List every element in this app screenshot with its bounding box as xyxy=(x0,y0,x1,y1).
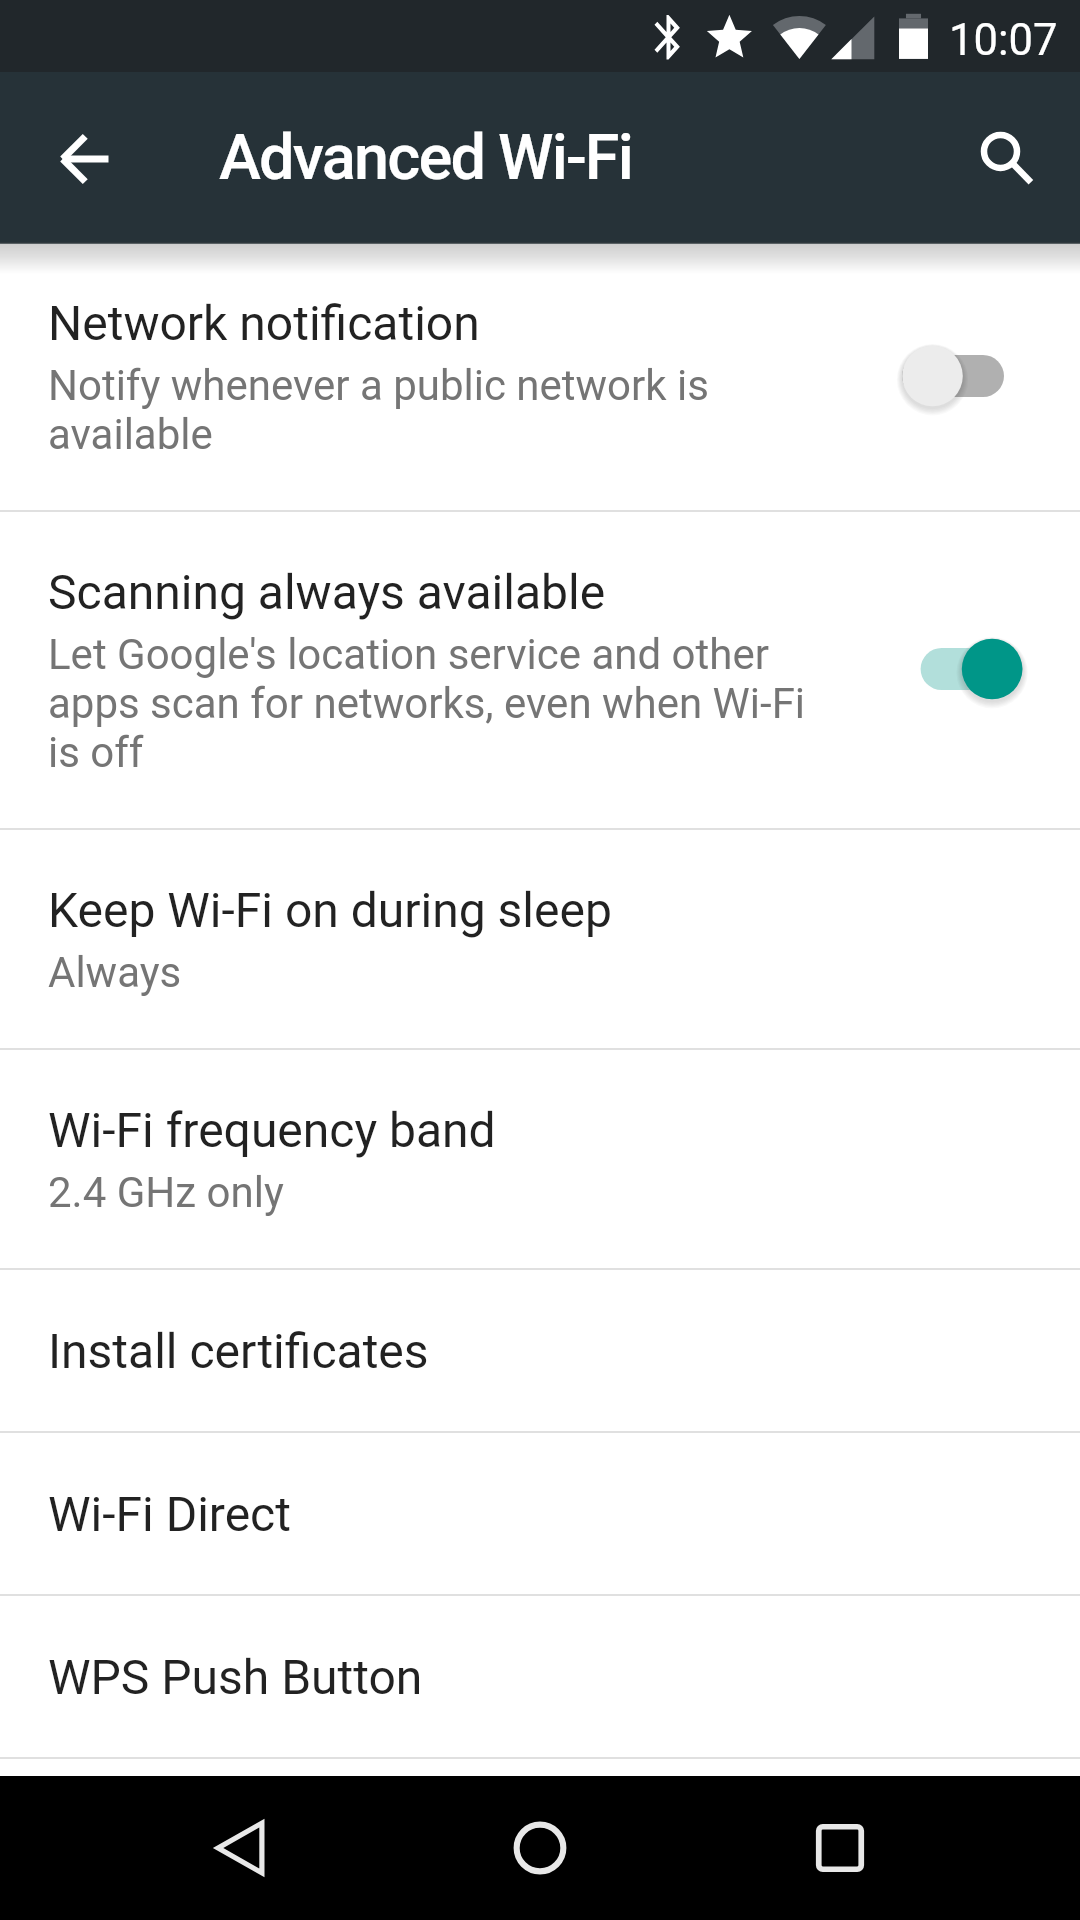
button[interactable]: On xyxy=(900,619,1042,719)
staticText: Network notification xyxy=(48,295,480,351)
staticText: Install certificates xyxy=(48,1323,429,1379)
button[interactable]: Install certificates xyxy=(0,1268,1080,1431)
staticText: Wi-Fi Direct xyxy=(48,1486,291,1542)
button[interactable]: Recent apps xyxy=(780,1788,900,1908)
staticText: WPS Push Button xyxy=(48,1649,423,1705)
staticText: Advanced Wi-Fi xyxy=(219,121,632,195)
button[interactable]: Network notification xyxy=(0,242,1080,510)
button[interactable]: Keep Wi-Fi on during sleep xyxy=(0,828,1080,1048)
button[interactable]: Navigate up xyxy=(36,111,132,207)
staticText: Keep Wi-Fi on during sleep xyxy=(48,882,612,938)
button[interactable]: WPS Push Button xyxy=(0,1594,1080,1757)
button[interactable]: Wi-Fi Direct xyxy=(0,1431,1080,1594)
button[interactable]: Search xyxy=(952,103,1048,199)
button[interactable]: Wi-Fi frequency band xyxy=(0,1048,1080,1268)
button[interactable]: Off xyxy=(882,326,1024,426)
staticText: Wi-Fi frequency band xyxy=(48,1102,496,1158)
staticText: 2.4 GHz only xyxy=(48,1168,284,1217)
staticText: Scanning always available xyxy=(48,564,606,620)
staticText: Notify whenever a public network is avai… xyxy=(48,361,818,459)
button[interactable]: Scanning always available xyxy=(0,510,1080,828)
button[interactable]: Back xyxy=(180,1788,300,1908)
button[interactable]: Home xyxy=(480,1788,600,1908)
staticText: Let Google's location service and other … xyxy=(48,630,818,777)
staticText: Always xyxy=(48,948,182,997)
staticText: 10:07 xyxy=(949,15,1058,66)
